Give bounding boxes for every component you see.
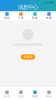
button[interactable]: 去逛逛 [21,54,35,60]
staticText: 首页 [4,95,10,98]
button[interactable]: 分类 [14,90,28,97]
staticText: 您还没有收到任何消息 [13,43,43,46]
button[interactable]: 客服 [28,12,42,20]
button[interactable]: 收藏 [42,12,56,20]
button[interactable]: 首页 [0,90,14,97]
button[interactable]: 消息 [28,90,42,97]
button[interactable]: 订单 [14,12,28,20]
staticText: 我的 [46,95,52,98]
staticText: 分类 [18,95,24,98]
button[interactable]: 消息 [0,12,14,20]
staticText: 收藏 [46,16,52,20]
staticText: 去逛逛 [24,55,33,59]
staticText: 订单 [18,16,24,20]
staticText: 客服 [32,16,38,20]
button[interactable]: 我的 [42,90,56,97]
staticText: 消息中心 [18,4,38,10]
staticText: 消息 [4,16,10,20]
staticText: 消息 [32,95,38,98]
